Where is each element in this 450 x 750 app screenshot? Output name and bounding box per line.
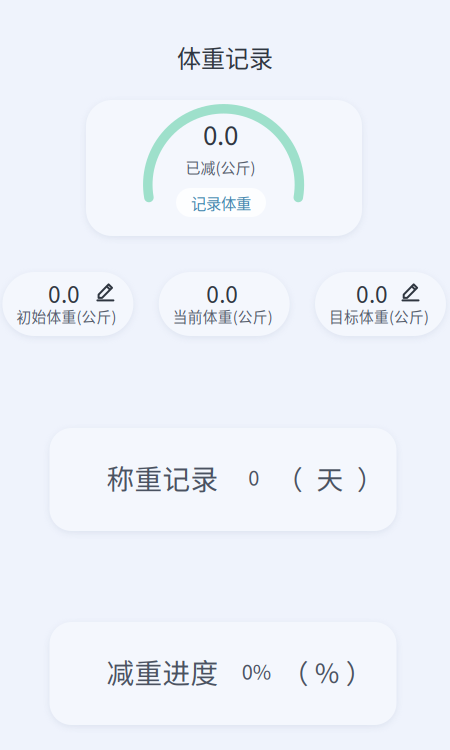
staticText: % (315, 652, 340, 691)
staticText: 0% (242, 656, 271, 685)
button[interactable]: 0.0 (315, 272, 446, 336)
staticText: （ (282, 652, 309, 691)
staticText: ） (357, 458, 384, 497)
staticText: 称重记录 (106, 457, 218, 497)
staticText: 0.0 (203, 115, 238, 153)
staticText: 0 (248, 462, 259, 491)
staticText: 初始体重(公斤) (16, 305, 116, 327)
staticText: ） (346, 652, 373, 691)
staticText: 减重进度 (106, 651, 218, 691)
staticText: 体重记录 (177, 40, 273, 74)
staticText: 天 (316, 458, 343, 497)
staticText: 目标体重(公斤) (329, 305, 429, 327)
staticText: 0.0 (356, 277, 388, 309)
button[interactable]: 0.0 (159, 272, 290, 336)
staticText: 0.0 (48, 277, 80, 309)
staticText: 0.0 (206, 277, 238, 309)
staticText: 已减(公斤) (185, 156, 255, 178)
staticText: （ (276, 458, 303, 497)
button[interactable]: 称重记录 (49, 428, 396, 531)
button[interactable]: 减重进度 (49, 622, 396, 725)
button[interactable]: 记录体重 (176, 188, 266, 217)
staticText: 记录体重 (191, 191, 251, 214)
button[interactable]: 0.0 (2, 272, 133, 336)
staticText: 当前体重(公斤) (173, 305, 273, 327)
